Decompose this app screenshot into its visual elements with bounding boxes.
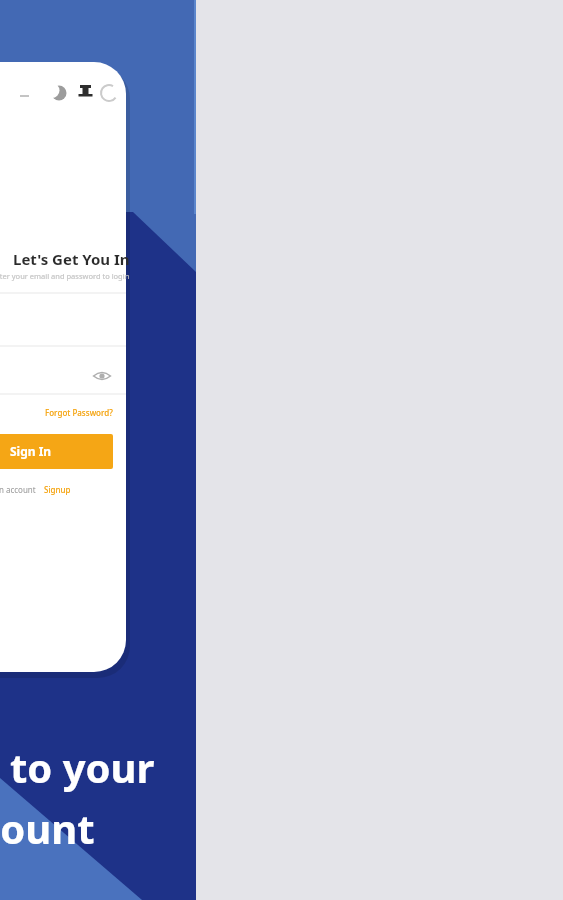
button[interactable]: Sign In — [11, 434, 113, 469]
button[interactable]: Signup — [28, 481, 68, 497]
button[interactable]: Show password — [90, 362, 118, 390]
button[interactable]: Forgot Password — [40, 403, 126, 421]
button[interactable]: Password field — [0, 350, 126, 392]
